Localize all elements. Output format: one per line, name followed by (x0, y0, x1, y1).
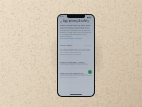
staticText: updated (84, 44, 92, 47)
button[interactable]: Back (59, 20, 62, 23)
button[interactable]: See developer details (60, 37, 82, 40)
staticText: Location, contacts and device identifier… (60, 62, 92, 66)
staticText: Data is encrypted in transit (60, 71, 88, 74)
staticText: This app may collect these data types an… (60, 26, 92, 38)
button[interactable]: Data is encrypted in transit (60, 70, 92, 74)
staticText: App privacy & safety (63, 19, 89, 23)
staticText: No data shared with third parties. The d… (60, 48, 92, 56)
staticText: Your data is transferred over a secure c… (60, 73, 92, 79)
staticText: Data collected · 2023 (60, 60, 85, 63)
button[interactable]: Back (58, 19, 94, 23)
staticText: ◼◼▮ (87, 16, 92, 18)
button[interactable]: Data safety (60, 44, 92, 47)
staticText: Data safety (60, 44, 73, 47)
staticText: Data collection in this app (60, 23, 91, 26)
staticText: 9:41 (60, 15, 65, 18)
